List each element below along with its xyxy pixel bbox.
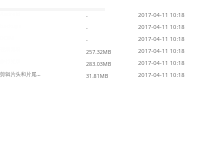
button[interactable]: backups	[0, 21, 220, 33]
staticText: 257.32MB	[86, 48, 112, 55]
button[interactable]: 视频素材	[0, 45, 220, 57]
staticText: -	[86, 12, 88, 19]
button[interactable]: 剪辑片头和片尾…	[0, 69, 220, 81]
staticText: 2017-04-11 10:18	[138, 11, 185, 19]
staticText: -	[86, 24, 88, 31]
button[interactable]: Android	[0, 9, 220, 21]
staticText: -	[86, 36, 88, 43]
button[interactable]: 旅行纪录	[0, 57, 220, 69]
staticText: 2017-04-11 10:18	[138, 47, 185, 55]
staticText: 2017-04-11 10:18	[138, 71, 185, 79]
staticText: 2017-04-11 10:18	[138, 23, 185, 31]
staticText: Android	[0, 10, 21, 17]
staticText: 2017-04-11 10:18	[138, 35, 185, 43]
button[interactable]: DCIM	[0, 33, 220, 45]
staticText: 283.03MB	[86, 60, 112, 67]
staticText: 剪辑片头和片尾…	[0, 70, 41, 77]
staticText: 2017-04-11 10:18	[138, 59, 185, 67]
staticText: 31.81MB	[86, 72, 109, 79]
